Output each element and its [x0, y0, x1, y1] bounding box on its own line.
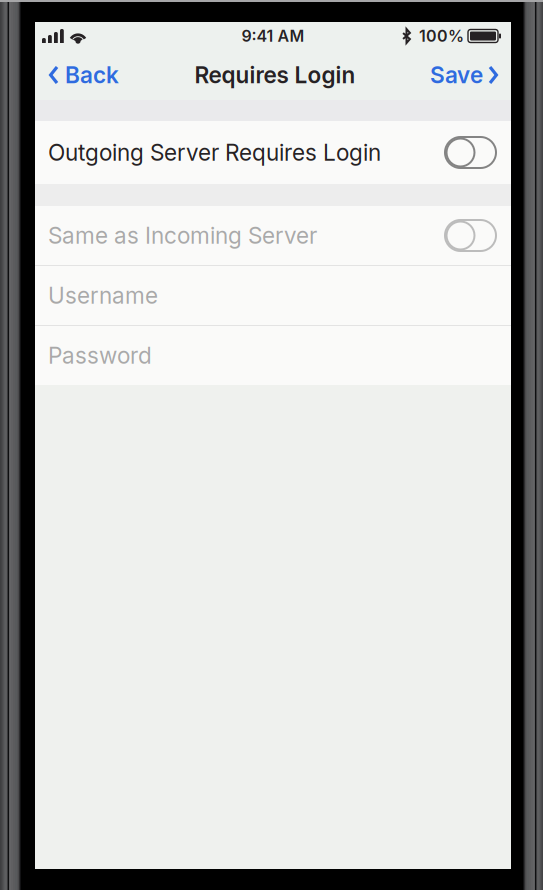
staticText: Requires Login — [194, 61, 355, 89]
staticText: Save — [430, 61, 483, 89]
staticText: Outgoing Server Requires Login — [48, 139, 381, 166]
button[interactable]: Back — [40, 53, 128, 97]
button[interactable]: Outgoing Server Requires Login — [35, 121, 511, 184]
staticText: Same as Incoming Server — [48, 222, 317, 249]
button[interactable]: Password — [35, 326, 511, 385]
button[interactable]: Same as Incoming Server — [35, 206, 511, 265]
button[interactable]: Username — [35, 266, 511, 325]
button[interactable]: Save — [422, 53, 506, 97]
staticText: 9:41 AM — [241, 26, 304, 46]
staticText: Back — [65, 61, 119, 89]
staticText: 100% — [419, 26, 464, 46]
staticText: Password — [48, 342, 152, 369]
staticText: Username — [48, 282, 158, 309]
